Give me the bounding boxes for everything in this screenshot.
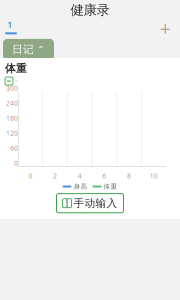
- staticText: 300: [6, 84, 18, 93]
- staticText: 60: [10, 144, 18, 153]
- staticText: 6: [102, 172, 106, 180]
- staticText: 4: [78, 172, 82, 180]
- staticText: 120: [6, 129, 18, 138]
- button[interactable]: 添加: [155, 18, 175, 38]
- staticText: +: [159, 15, 170, 41]
- staticText: 体重: [5, 62, 27, 75]
- staticText: 180: [6, 114, 18, 123]
- staticText: 0: [28, 172, 32, 180]
- staticText: ⌃: [37, 44, 45, 55]
- staticText: 1: [7, 18, 12, 30]
- button[interactable]: 1: [0, 18, 17, 34]
- staticText: 8: [127, 172, 131, 180]
- staticText: 2: [53, 172, 57, 180]
- staticText: 0: [14, 159, 18, 168]
- staticText: 身高: [73, 182, 87, 191]
- staticText: 日记: [12, 43, 34, 56]
- staticText: 健康录: [70, 2, 109, 18]
- button[interactable]: 手动输入: [56, 194, 123, 213]
- staticText: 10: [150, 172, 158, 180]
- staticText: 体重: [103, 182, 117, 191]
- staticText: 手动输入: [73, 197, 117, 210]
- staticText: 240: [6, 99, 18, 108]
- button[interactable]: 日记: [3, 39, 54, 60]
